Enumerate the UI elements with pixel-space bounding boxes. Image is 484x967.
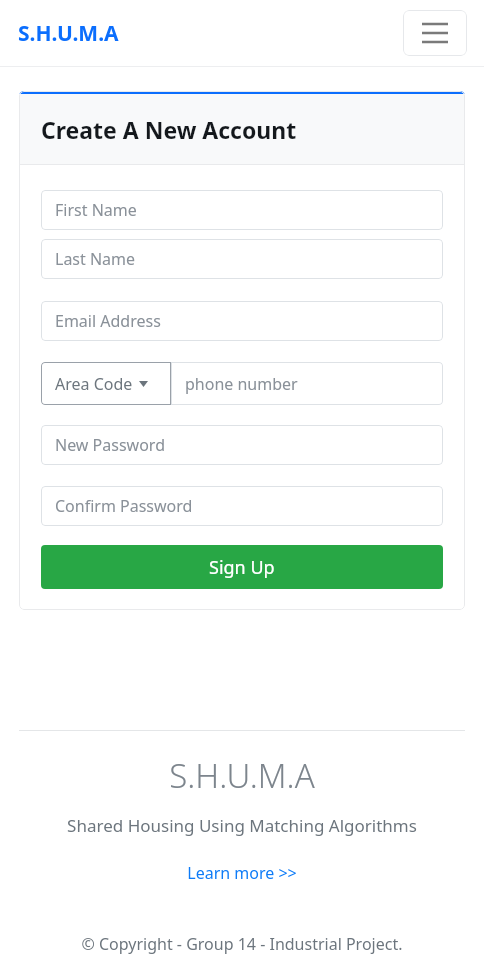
button[interactable]: Confirm Password [41, 486, 443, 526]
button[interactable]: New Password [41, 425, 443, 465]
staticText: Create A New Account [41, 114, 297, 145]
staticText: Last Name [55, 248, 136, 270]
button[interactable]: phone number [171, 362, 443, 405]
staticText: phone number [185, 373, 298, 395]
staticText: Email Address [55, 310, 161, 332]
staticText: Sign Up [209, 555, 275, 580]
button[interactable]: First Name [41, 190, 443, 230]
staticText: Shared Housing Using Matching Algorithms [0, 814, 484, 837]
staticText: S.H.U.M.A [0, 753, 484, 798]
staticText: New Password [55, 434, 165, 456]
button[interactable]: Sign Up [41, 545, 443, 589]
staticText: First Name [55, 199, 137, 221]
staticText: Area Code [55, 373, 133, 395]
button[interactable]: Learn more >> [183, 858, 301, 888]
button[interactable]: S.H.U.M.A [18, 19, 119, 48]
staticText: © Copyright - Group 14 - Industrial Proj… [0, 933, 484, 955]
button[interactable]: Last Name [41, 239, 443, 279]
button[interactable]: Email Address [41, 301, 443, 341]
staticText: Confirm Password [55, 495, 193, 517]
button[interactable]: Area Code [41, 362, 171, 405]
button[interactable]: Menu [403, 10, 467, 56]
